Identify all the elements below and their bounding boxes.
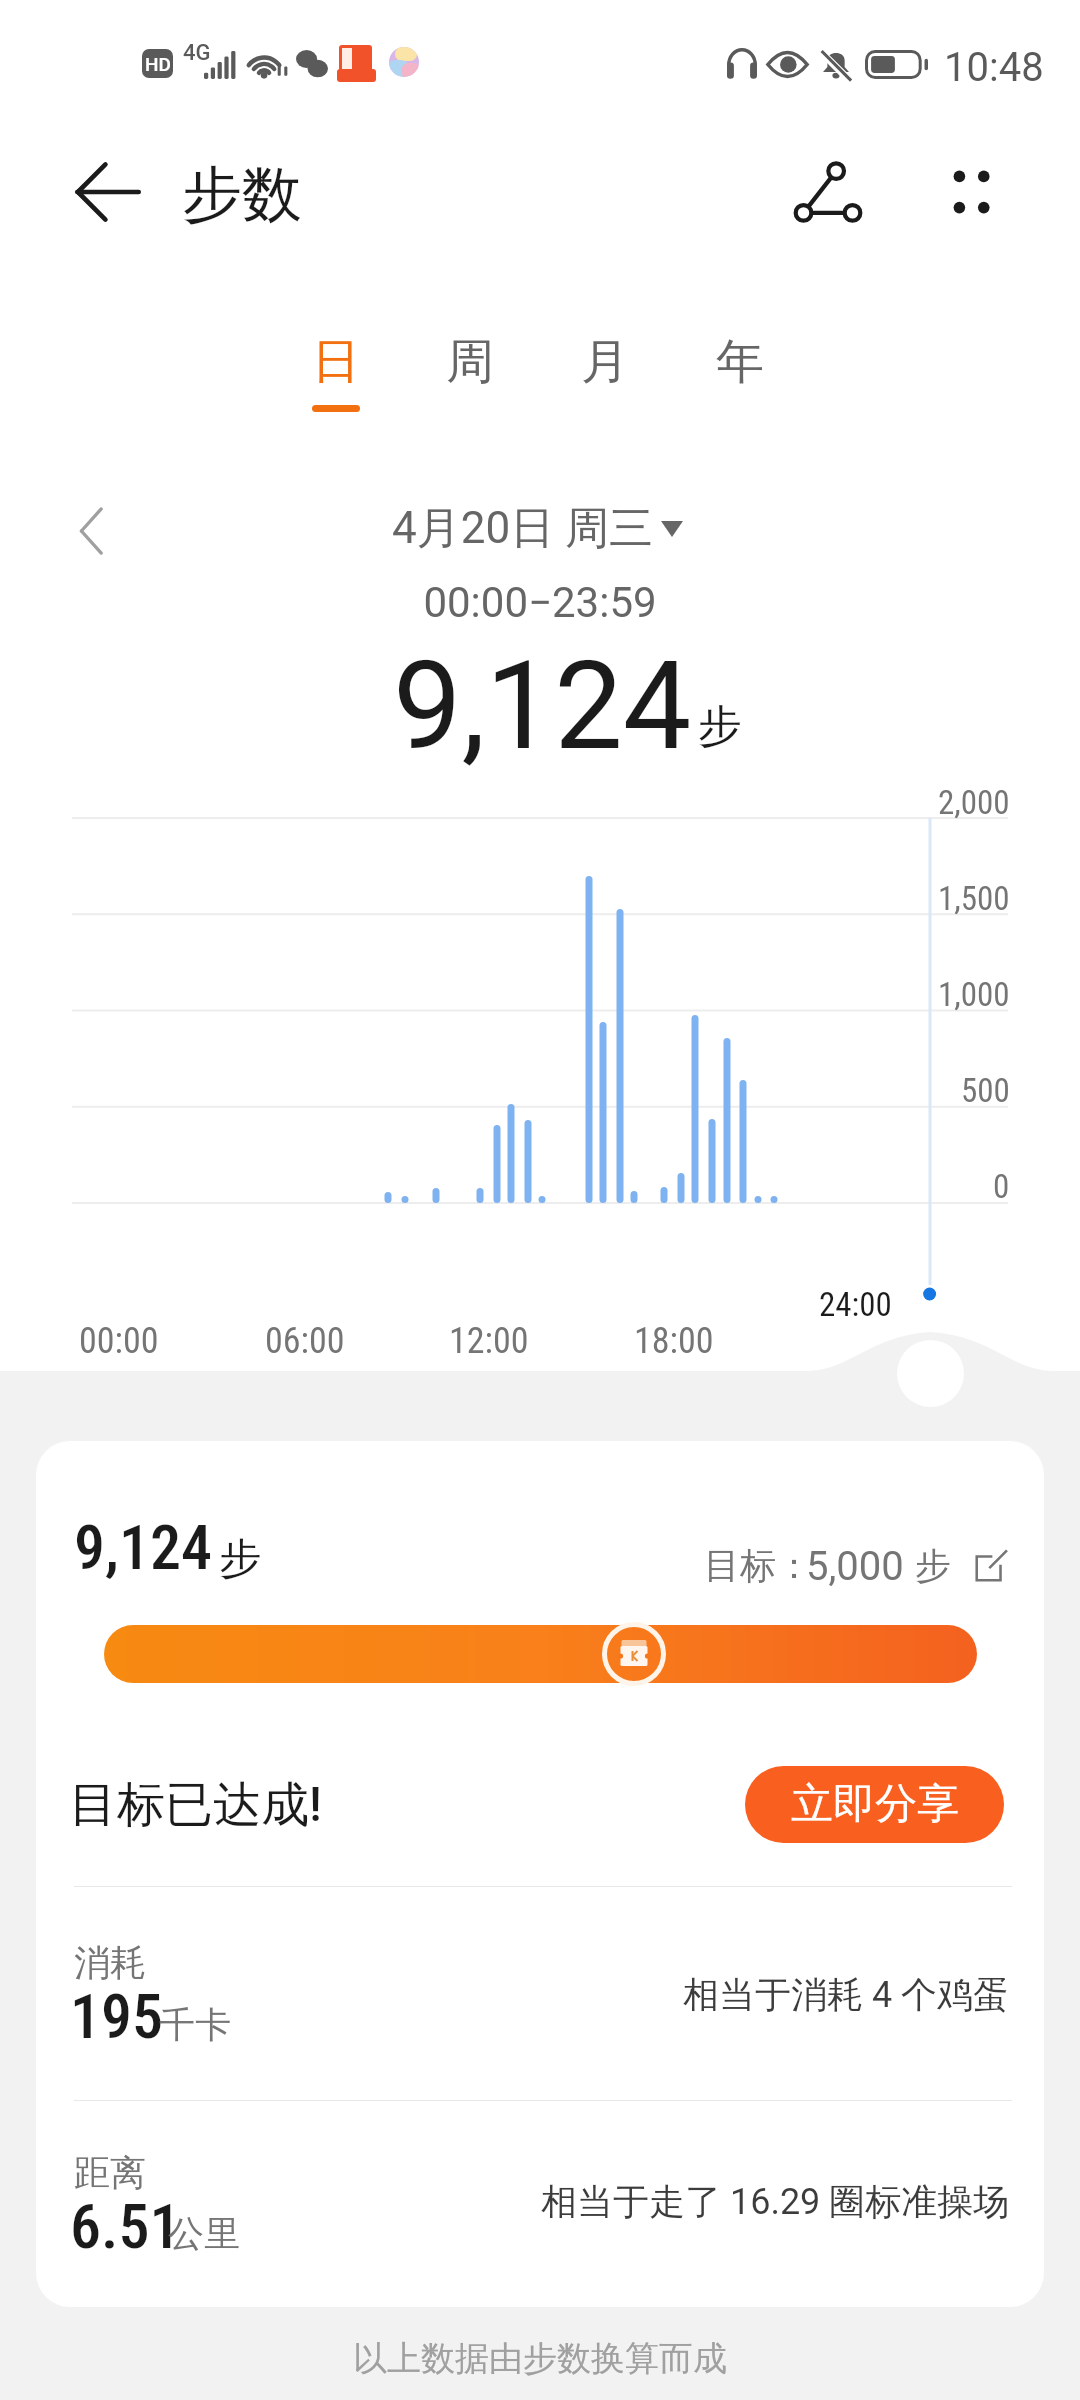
staticText: 目标已达成! <box>69 1775 322 1835</box>
staticText: 千卡 <box>159 2002 231 2047</box>
staticText: 年 <box>716 332 764 392</box>
staticText: HD <box>145 53 171 75</box>
staticText: 00:00−23:59 <box>0 578 1080 627</box>
staticText: 相当于走了 16.29 圈标准操场 <box>541 2179 1010 2224</box>
staticText: 2,000 <box>938 783 1010 822</box>
staticText: 消耗 <box>74 1940 146 1985</box>
button[interactable]: 年 <box>685 322 795 422</box>
staticText: 月 <box>581 332 629 392</box>
button[interactable]: More options <box>911 132 1031 252</box>
staticText: 9,124 <box>74 1511 213 1584</box>
staticText: 10:48 <box>944 44 1044 91</box>
staticText: 周 <box>446 332 494 392</box>
button[interactable]: 立即分享 <box>745 1766 1004 1843</box>
staticText: 公里 <box>168 2211 240 2256</box>
staticText: 4G <box>183 40 211 66</box>
button[interactable]: 周 <box>415 322 525 422</box>
staticText: 立即分享 <box>791 1778 959 1831</box>
staticText: 目标： <box>704 1543 812 1588</box>
staticText: 步数 <box>182 157 302 233</box>
staticText: 1,000 <box>938 975 1010 1014</box>
staticText: 步 <box>698 699 742 754</box>
button[interactable]: 月 <box>550 322 660 422</box>
staticText: 日 <box>312 332 360 392</box>
staticText: 00:00 <box>79 1320 159 1362</box>
staticText: 6.51 <box>70 2190 181 2263</box>
staticText: 24:00 <box>819 1285 892 1324</box>
staticText: 18:00 <box>634 1320 714 1362</box>
button[interactable]: Previous day <box>56 496 126 566</box>
button[interactable]: Edit goal <box>974 1549 1008 1583</box>
staticText: 步 <box>219 1533 261 1586</box>
staticText: 1,500 <box>938 879 1010 918</box>
staticText: 0 <box>993 1167 1010 1206</box>
button[interactable]: 4月20日 周三 <box>392 501 683 556</box>
staticText: 9,124 <box>393 635 692 778</box>
staticText: 195 <box>70 1980 164 2053</box>
staticText: 12:00 <box>449 1320 529 1362</box>
staticText: 5,000 <box>806 1543 904 1590</box>
button[interactable]: 日 <box>281 322 391 422</box>
staticText: 距离 <box>74 2150 146 2195</box>
button[interactable]: Share <box>768 132 888 252</box>
staticText: 以上数据由步数换算而成 <box>0 2337 1080 2380</box>
button[interactable]: Back <box>48 132 168 252</box>
staticText: 06:00 <box>265 1320 345 1362</box>
staticText: 4月20日 周三 <box>392 501 654 556</box>
staticText: 相当于消耗 4 个鸡蛋 <box>683 1972 1010 2017</box>
staticText: 500 <box>961 1071 1010 1110</box>
staticText: 步 <box>915 1543 951 1588</box>
